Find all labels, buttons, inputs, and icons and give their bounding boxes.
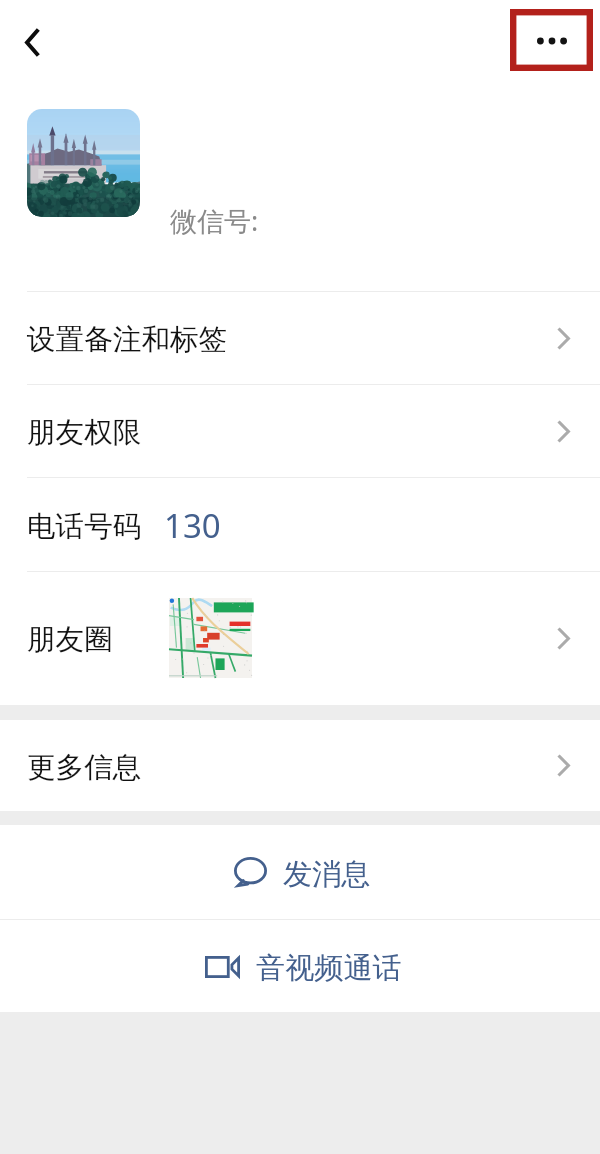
staticText: 微信号: [170, 202, 259, 239]
staticText: 朋友圈 [27, 621, 113, 657]
button[interactable]: 音视频通话 [0, 920, 600, 1012]
button[interactable]: 更多信息 [0, 720, 600, 811]
staticText: 设置备注和标签 [27, 321, 228, 357]
staticText: 音视频通话 [256, 950, 402, 987]
button[interactable]: 电话号码 [0, 478, 600, 571]
button[interactable]: 朋友权限 [0, 385, 600, 477]
button[interactable]: 发消息 [0, 825, 600, 919]
staticText: 发消息 [283, 856, 371, 893]
staticText: 130 [164, 503, 221, 548]
button[interactable]: 设置备注和标签 [0, 292, 600, 384]
button[interactable]: Avatar [27, 109, 140, 217]
staticText: 朋友权限 [27, 414, 142, 450]
button[interactable]: 朋友圈 [0, 572, 600, 705]
staticText: 电话号码 [27, 508, 142, 544]
button[interactable]: More options [510, 9, 593, 71]
staticText: 更多信息 [27, 749, 142, 785]
button[interactable]: Back [12, 22, 52, 62]
